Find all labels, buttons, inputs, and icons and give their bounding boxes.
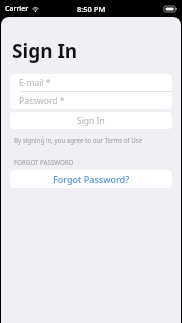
button[interactable]: Password * xyxy=(10,92,172,109)
button[interactable]: Forgot Password? xyxy=(10,170,172,188)
staticText: 8:50 PM xyxy=(77,4,106,14)
staticText: Forgot Password? xyxy=(53,173,130,185)
button[interactable]: E-mail * xyxy=(10,74,172,91)
button[interactable]: Sign In xyxy=(10,112,172,129)
staticText: Password * xyxy=(19,95,65,107)
staticText: Sign In xyxy=(77,115,105,127)
staticText: Carrier xyxy=(5,4,29,14)
staticText: By signing in, you agree to our Terms of… xyxy=(14,136,181,144)
staticText: Sign In xyxy=(12,38,78,64)
staticText: FORGOT PASSWORD xyxy=(14,158,74,166)
staticText: E-mail * xyxy=(19,77,51,89)
